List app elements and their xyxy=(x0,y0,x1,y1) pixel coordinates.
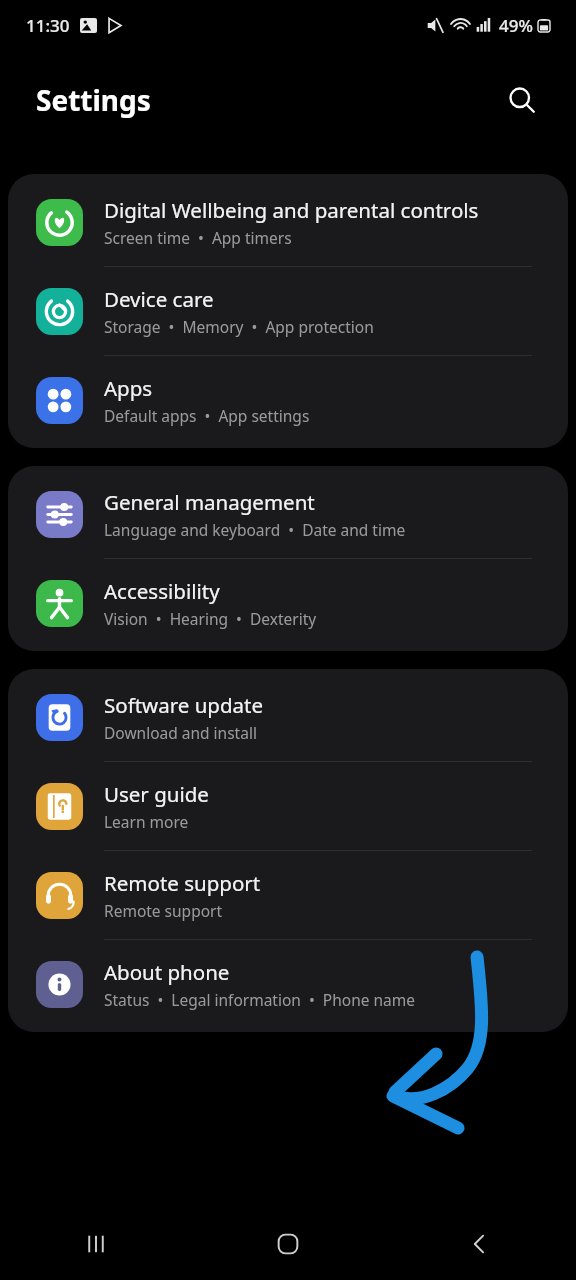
staticText: Device care xyxy=(104,285,214,313)
staticText: Accessibility xyxy=(104,577,220,605)
staticText: 11:30 xyxy=(26,14,70,37)
staticText: Vision • Hearing • Dexterity xyxy=(104,608,317,629)
button[interactable]: User guide xyxy=(8,762,568,850)
button[interactable]: Digital Wellbeing and parental controls xyxy=(8,178,568,266)
staticText: Remote support xyxy=(104,900,223,921)
staticText: Status • Legal information • Phone name xyxy=(104,989,416,1010)
button[interactable]: Back xyxy=(384,1208,576,1280)
staticText: Settings xyxy=(36,81,151,119)
staticText: Software update xyxy=(104,691,264,719)
staticText: 49% xyxy=(499,14,533,37)
button[interactable]: Remote support xyxy=(8,851,568,939)
button[interactable]: Software update xyxy=(8,673,568,761)
staticText: Download and install xyxy=(104,722,257,743)
staticText: About phone xyxy=(104,958,230,986)
staticText: User guide xyxy=(104,780,209,808)
button[interactable]: General management xyxy=(8,470,568,558)
staticText: Storage • Memory • App protection xyxy=(104,316,374,337)
staticText: Apps xyxy=(104,374,153,402)
button[interactable]: Device care xyxy=(8,267,568,355)
button[interactable]: Apps xyxy=(8,356,568,444)
staticText: Default apps • App settings xyxy=(104,405,310,426)
staticText: Screen time • App timers xyxy=(104,227,292,248)
staticText: Digital Wellbeing and parental controls xyxy=(104,196,479,224)
staticText: Language and keyboard • Date and time xyxy=(104,519,406,540)
button[interactable]: About phone xyxy=(8,940,568,1028)
staticText: General management xyxy=(104,488,315,516)
staticText: Learn more xyxy=(104,811,189,832)
button[interactable]: Accessibility xyxy=(8,559,568,647)
button[interactable]: Home xyxy=(192,1208,384,1280)
button[interactable]: Recents xyxy=(0,1208,192,1280)
staticText: Remote support xyxy=(104,869,261,897)
button[interactable]: Search xyxy=(498,76,546,124)
